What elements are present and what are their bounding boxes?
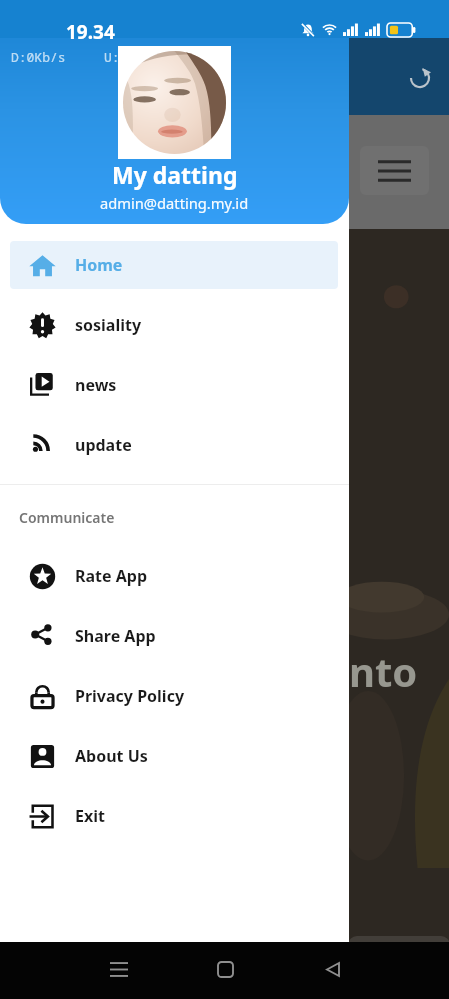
button[interactable]: Home	[207, 951, 244, 988]
staticText: Communicate	[19, 508, 115, 527]
staticText: Rate App	[75, 565, 148, 587]
staticText: Share App	[75, 625, 156, 647]
button[interactable]: Recents	[100, 951, 137, 988]
button[interactable]: Home	[10, 241, 338, 289]
staticText: My datting	[112, 159, 238, 190]
staticText: D:0Kb/s	[11, 48, 66, 66]
staticText: news	[75, 374, 117, 396]
staticText: Home	[75, 254, 123, 276]
staticText: admin@datting.my.id	[100, 193, 249, 213]
staticText: update	[75, 434, 132, 456]
button[interactable]: About Us	[10, 732, 338, 780]
staticText: U:0Kb/s	[104, 48, 159, 66]
staticText: into	[337, 644, 418, 698]
button[interactable]: Rate App	[10, 552, 338, 600]
staticText: 19.34	[66, 19, 115, 45]
button[interactable]: Privacy Policy	[10, 672, 338, 720]
button[interactable]	[360, 146, 429, 195]
staticText: About Us	[75, 745, 148, 767]
staticText: Exit	[75, 805, 105, 827]
button[interactable]: update	[10, 421, 338, 469]
button[interactable]: news	[10, 361, 338, 409]
button[interactable]: Refresh	[400, 58, 440, 98]
button[interactable]: sosiality	[10, 301, 338, 349]
button[interactable]: Exit	[10, 792, 338, 840]
button[interactable]: Back	[314, 951, 351, 988]
button[interactable]: Share App	[10, 612, 338, 660]
staticText: sosiality	[75, 314, 142, 336]
staticText: Privacy Policy	[75, 685, 185, 707]
